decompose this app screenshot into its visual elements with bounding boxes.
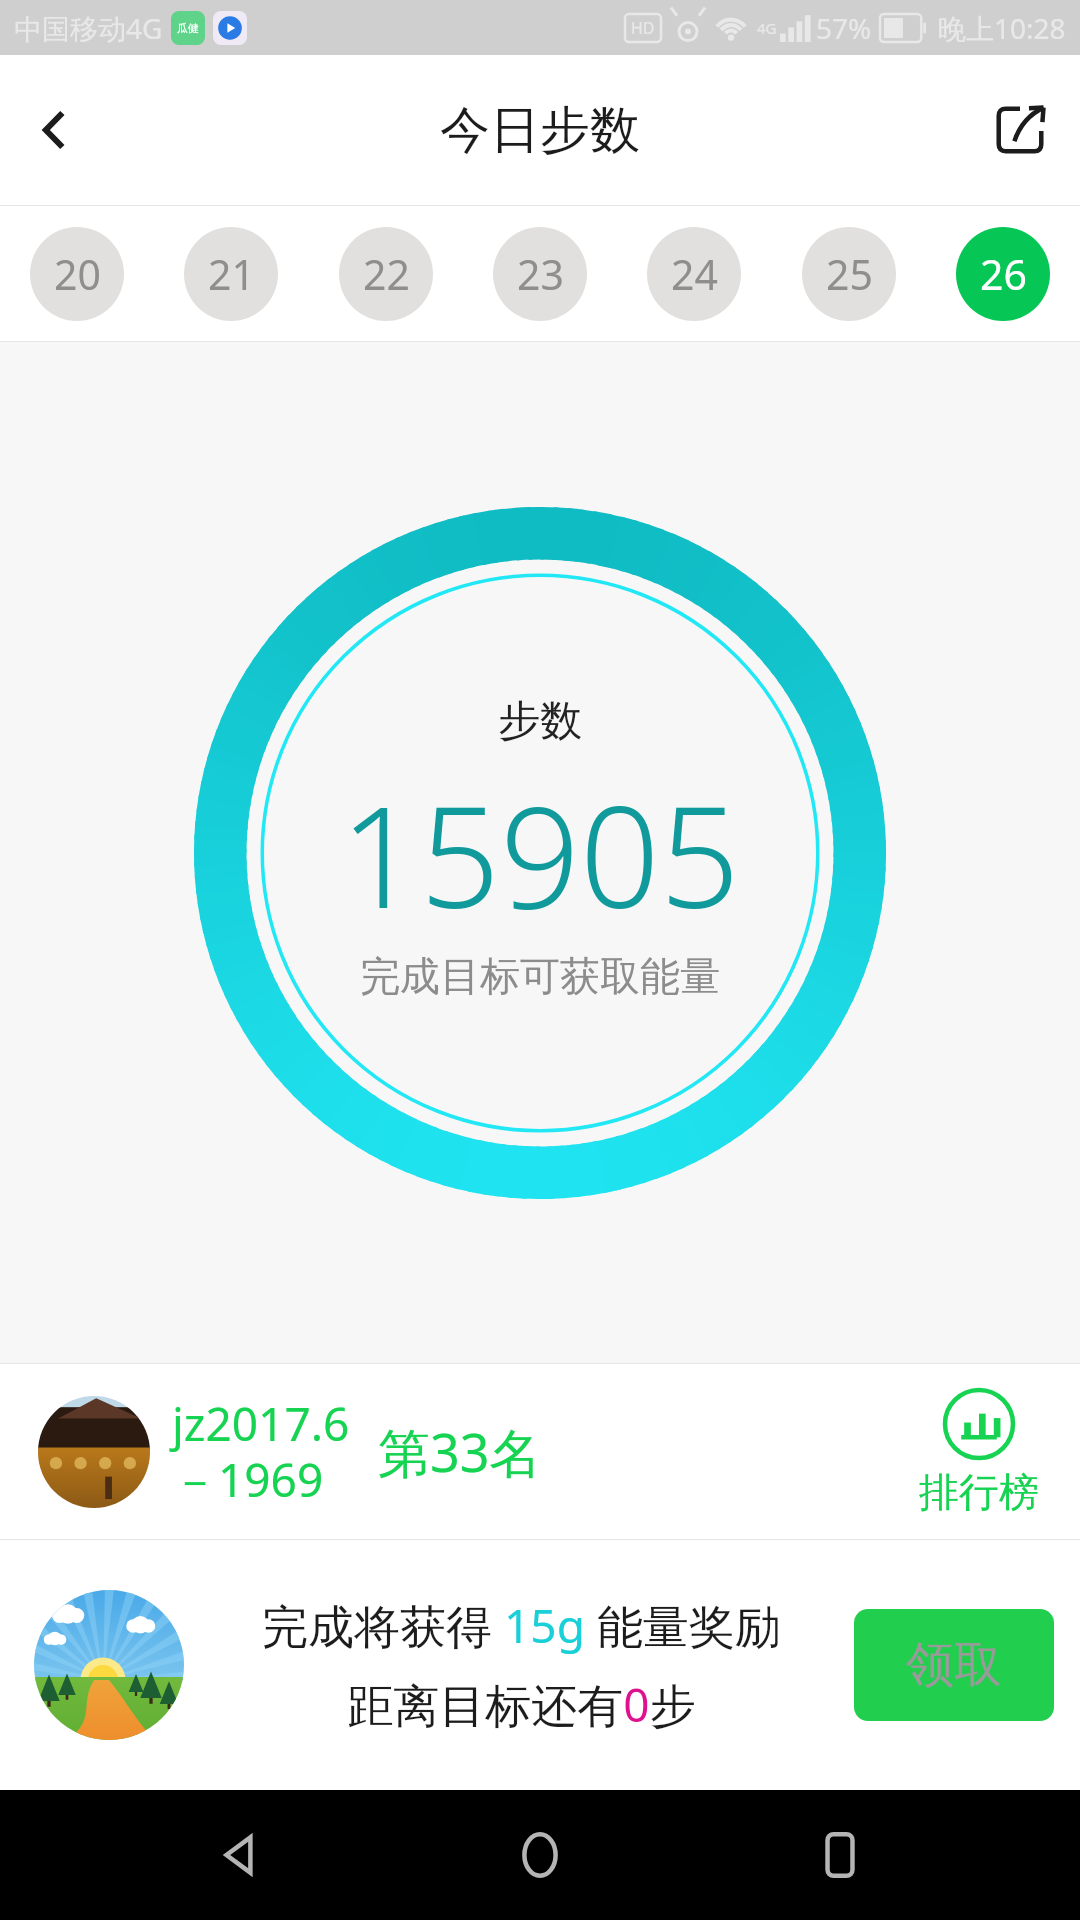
staticText: 步数 xyxy=(498,695,582,748)
staticText: 中国移动4G xyxy=(14,9,163,47)
staticText: 瓜健 xyxy=(177,21,199,35)
staticText: 26 xyxy=(980,246,1027,302)
staticText: 今日步数 xyxy=(440,99,640,162)
button[interactable]: 主屏幕 xyxy=(480,1795,600,1915)
button[interactable]: 21 xyxy=(184,227,278,321)
staticText: 20 xyxy=(54,246,101,302)
staticText: 排行榜 xyxy=(919,1467,1039,1517)
staticText: HD xyxy=(631,17,655,39)
staticText: 22 xyxy=(363,246,410,302)
staticText: 领取 xyxy=(906,1635,1002,1695)
button[interactable]: 最近任务 xyxy=(780,1795,900,1915)
button[interactable]: 排行榜 xyxy=(904,1387,1054,1517)
staticText: 完成将获得 15g 能量奖励 xyxy=(262,1594,781,1657)
button[interactable]: 20 xyxy=(30,227,124,321)
staticText: 57% xyxy=(816,9,872,47)
button[interactable]: 26 xyxy=(956,227,1050,321)
button[interactable]: 23 xyxy=(493,227,587,321)
staticText: 23 xyxy=(517,246,564,302)
staticText: 25 xyxy=(826,246,873,302)
button[interactable]: 领取 xyxy=(854,1609,1054,1721)
staticText: 21 xyxy=(208,246,255,302)
staticText: 15905 xyxy=(340,758,740,949)
button[interactable]: 25 xyxy=(802,227,896,321)
staticText: 完成目标可获取能量 xyxy=(360,951,720,1001)
button[interactable]: 返回 xyxy=(180,1795,300,1915)
staticText: jz2017.6 －1969 xyxy=(172,1392,350,1511)
staticText: 4G xyxy=(757,18,777,38)
button[interactable]: 返回 xyxy=(0,75,110,185)
staticText: 第33名 xyxy=(378,1416,542,1487)
button[interactable]: 24 xyxy=(647,227,741,321)
staticText: 距离目标还有0步 xyxy=(347,1673,696,1736)
button[interactable]: 分享 xyxy=(960,70,1080,190)
button[interactable]: 22 xyxy=(339,227,433,321)
staticText: 24 xyxy=(671,246,718,302)
staticText: 晚上10:28 xyxy=(938,9,1066,47)
